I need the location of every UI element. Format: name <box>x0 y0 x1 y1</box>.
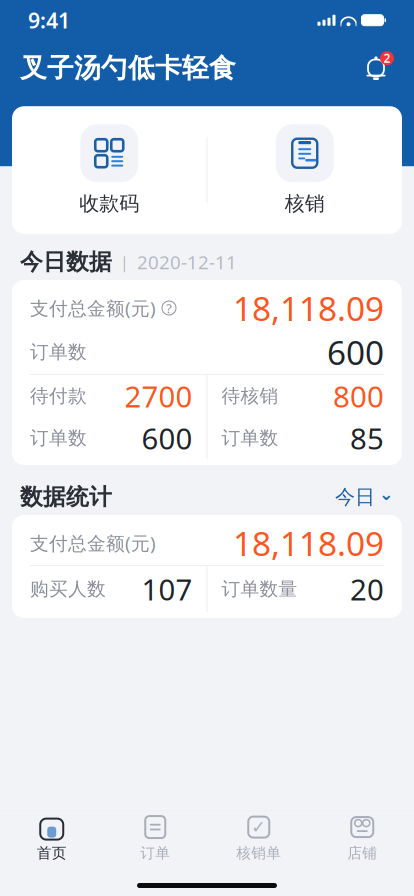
staticText: ✓ <box>251 817 266 837</box>
staticText: 订单数量 <box>221 577 297 600</box>
staticText: 今日 <box>335 485 375 509</box>
staticText: 购买人数 <box>30 577 106 600</box>
staticText: 叉子汤勺低卡轻食 <box>20 52 236 85</box>
button[interactable]: 今日 <box>327 481 394 513</box>
staticText: 店铺 <box>347 844 377 862</box>
staticText: 18,118.09 <box>233 521 384 565</box>
button[interactable]: 店铺 <box>310 807 414 866</box>
button[interactable]: 核销 <box>207 120 402 220</box>
staticText: 9:41 <box>28 6 70 34</box>
staticText: ? <box>166 299 172 317</box>
button[interactable]: Notifications, 2 unread <box>358 50 394 86</box>
staticText: 支付总金额(元) <box>30 296 156 320</box>
staticText: 订单数 <box>30 426 87 449</box>
staticText: 600 <box>327 330 384 374</box>
button[interactable]: 收款码 <box>12 120 206 220</box>
button[interactable]: 订单 <box>103 807 207 866</box>
staticText: 订单数 <box>30 340 87 363</box>
button[interactable]: 首页 <box>0 807 103 866</box>
staticText: 85 <box>350 418 384 457</box>
staticText: 数据统计 <box>20 483 112 511</box>
staticText: 待核销 <box>221 384 278 407</box>
button[interactable]: ✓ <box>207 807 310 866</box>
staticText: 107 <box>141 569 192 608</box>
staticText: 18,118.09 <box>233 286 384 330</box>
staticText: 订单数 <box>221 426 278 449</box>
staticText: 20 <box>350 569 384 608</box>
staticText: 收款码 <box>79 191 139 216</box>
staticText: 支付总金额(元) <box>30 531 156 555</box>
staticText: 核销 <box>285 191 325 216</box>
staticText: 待付款 <box>30 384 87 407</box>
staticText: 600 <box>141 418 192 457</box>
staticText: | <box>120 251 129 273</box>
staticText: ⌄ <box>379 484 394 504</box>
staticText: 今日数据 <box>20 248 112 276</box>
staticText: 2700 <box>124 376 192 415</box>
staticText: 2 <box>383 50 390 66</box>
staticText: 首页 <box>37 844 67 862</box>
staticText: 800 <box>333 376 384 415</box>
staticText: 2020-12-11 <box>137 250 237 274</box>
staticText: 核销单 <box>236 844 281 862</box>
staticText: 订单 <box>140 844 170 862</box>
